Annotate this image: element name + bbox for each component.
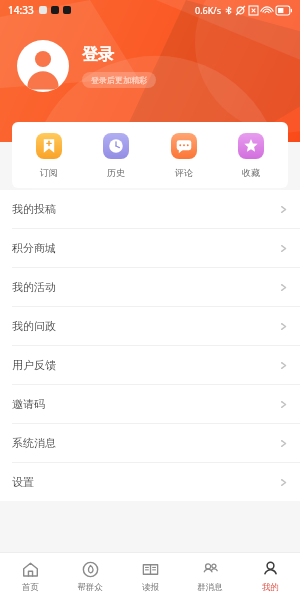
staticText: 群消息 xyxy=(197,582,223,593)
staticText: 用户反馈 xyxy=(12,358,56,372)
staticText: 我的投稿 xyxy=(12,202,56,216)
button[interactable]: 我的活动 xyxy=(0,268,300,306)
staticText: 0.6K/s xyxy=(195,4,221,16)
button[interactable]: 读报 xyxy=(120,553,180,600)
button[interactable]: 邀请码 xyxy=(0,385,300,423)
button[interactable]: 登录 xyxy=(17,40,300,92)
staticText: 评论 xyxy=(175,167,193,178)
button[interactable]: 首页 xyxy=(0,553,60,600)
button[interactable]: 设置 xyxy=(0,463,300,501)
button[interactable]: 群消息 xyxy=(180,553,240,600)
staticText: 历史 xyxy=(107,167,125,178)
staticText: 我的问政 xyxy=(12,319,56,333)
button[interactable]: 帮群众 xyxy=(60,553,120,600)
button[interactable]: 我的 xyxy=(240,553,300,600)
button[interactable]: 评论 xyxy=(153,129,215,182)
staticText: 设置 xyxy=(12,475,34,489)
staticText: 邀请码 xyxy=(12,397,45,411)
staticText: 订阅 xyxy=(40,167,58,178)
button[interactable]: 收藏 xyxy=(220,129,282,182)
staticText: 收藏 xyxy=(242,167,260,178)
staticText: 读报 xyxy=(142,582,159,593)
staticText: 帮群众 xyxy=(77,582,103,593)
staticText: 登录后更加精彩 xyxy=(91,75,147,85)
button[interactable]: 用户反馈 xyxy=(0,346,300,384)
button[interactable]: 积分商城 xyxy=(0,229,300,267)
button[interactable]: 历史 xyxy=(85,129,147,182)
button[interactable]: 系统消息 xyxy=(0,424,300,462)
staticText: 我的 xyxy=(262,582,279,593)
button[interactable]: 我的投稿 xyxy=(0,190,300,228)
staticText: 首页 xyxy=(22,582,39,593)
staticText: 14:33 xyxy=(8,3,34,17)
staticText: 我的活动 xyxy=(12,280,56,294)
staticText: 系统消息 xyxy=(12,436,56,450)
button[interactable]: 我的问政 xyxy=(0,307,300,345)
staticText: 积分商城 xyxy=(12,241,56,255)
staticText: 登录 xyxy=(82,45,114,65)
button[interactable]: 订阅 xyxy=(18,129,80,182)
